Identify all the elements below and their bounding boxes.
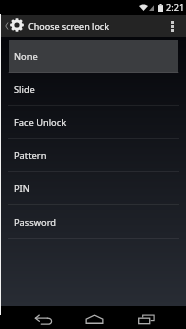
button[interactable]: PIN bbox=[0, 172, 186, 205]
button[interactable]: Slide bbox=[0, 73, 186, 106]
staticText: Pattern bbox=[14, 149, 47, 162]
staticText: Password bbox=[14, 216, 57, 229]
staticText: Choose screen lock bbox=[28, 20, 109, 32]
button[interactable]: Navigate up bbox=[0, 15, 27, 37]
staticText: Face Unlock bbox=[14, 116, 67, 129]
button[interactable]: Home bbox=[84, 306, 105, 329]
staticText: None bbox=[14, 50, 38, 63]
button[interactable]: More options bbox=[164, 15, 181, 37]
staticText: Slide bbox=[14, 83, 35, 96]
staticText: PIN bbox=[14, 182, 30, 195]
button[interactable]: Back bbox=[33, 306, 54, 329]
staticText: 2:21 bbox=[166, 1, 185, 14]
button[interactable]: Pattern bbox=[0, 139, 186, 172]
button[interactable]: Recent apps bbox=[136, 306, 157, 329]
button[interactable]: Face Unlock bbox=[0, 106, 186, 139]
button[interactable]: None bbox=[0, 40, 186, 73]
button[interactable]: Password bbox=[0, 206, 186, 239]
